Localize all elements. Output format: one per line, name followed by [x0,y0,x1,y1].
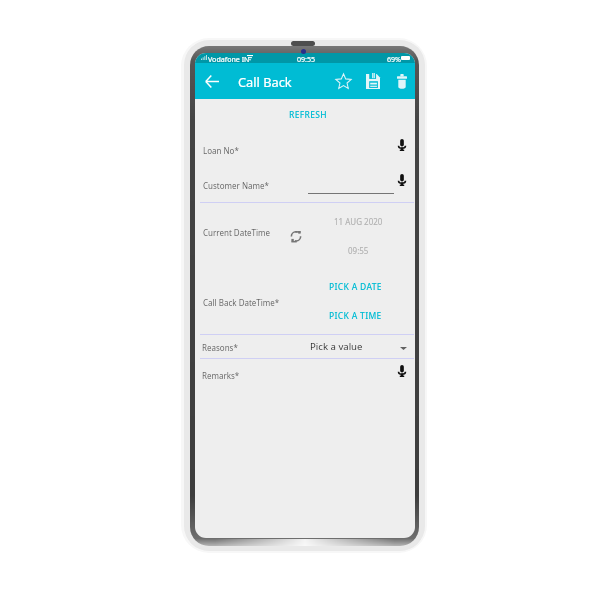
staticText: Current DateTime [203,227,271,238]
staticText: Pick a value [310,340,363,353]
staticText: Vodafone IN [208,54,250,64]
staticText: 11 AUG 2020 [334,216,383,227]
button[interactable]: Voice input for customer name [393,171,411,189]
button[interactable]: Delete [391,70,413,92]
staticText: PICK A DATE [329,281,382,293]
button[interactable]: Voice input for loan number [393,136,411,154]
button[interactable]: Open dropdown [395,340,411,356]
staticText: 69% [387,54,402,64]
staticText: Call Back DateTime* [203,297,280,308]
button[interactable]: REFRESH [281,105,335,125]
button[interactable]: Back [200,69,224,93]
staticText: Remarks* [202,370,240,381]
button[interactable]: Save [362,70,384,92]
staticText: Customer Name* [203,180,269,191]
staticText: Reasons* [202,342,238,353]
button[interactable]: PICK A TIME [312,308,382,324]
button[interactable]: PICK A DATE [312,279,382,295]
staticText: PICK A TIME [329,310,382,322]
staticText: Loan No* [203,145,239,156]
staticText: Call Back [238,73,292,90]
button[interactable]: Refresh date and time [287,227,305,245]
staticText: REFRESH [289,109,327,121]
button[interactable]: Favorite [332,70,354,92]
button[interactable]: Voice input for remarks [393,362,411,380]
staticText: 09:55 [297,54,316,64]
staticText: 09:55 [348,245,369,256]
